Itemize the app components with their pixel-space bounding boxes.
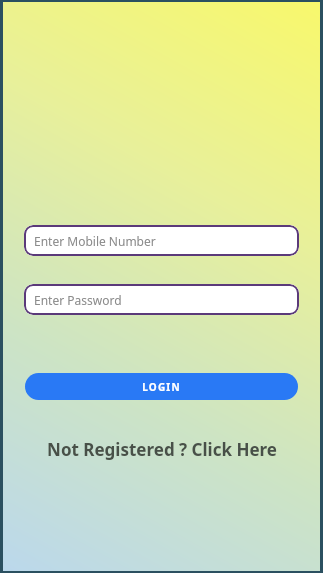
button[interactable]: Not Registered ? Click Here bbox=[19, 438, 304, 461]
staticText: LOGIN bbox=[142, 380, 181, 394]
button[interactable]: Enter Mobile Number bbox=[24, 225, 299, 256]
staticText: Not Registered ? Click Here bbox=[47, 438, 277, 461]
button[interactable]: Enter Password bbox=[24, 284, 299, 315]
button[interactable]: LOGIN bbox=[25, 373, 298, 400]
staticText: Enter Mobile Number bbox=[34, 233, 156, 249]
staticText: Enter Password bbox=[34, 292, 122, 308]
